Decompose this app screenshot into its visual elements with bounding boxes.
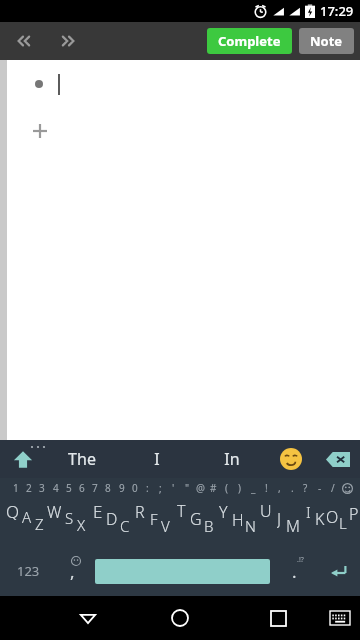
staticText: ' bbox=[172, 481, 175, 495]
button[interactable]: Z bbox=[32, 514, 47, 534]
button[interactable]: 6 bbox=[75, 480, 88, 496]
button[interactable]: 8 bbox=[101, 480, 114, 496]
button[interactable]: ! bbox=[260, 480, 273, 496]
button[interactable]: E bbox=[90, 500, 105, 520]
button[interactable]: Complete bbox=[207, 28, 292, 54]
button[interactable]: N bbox=[243, 516, 258, 536]
button[interactable]: " bbox=[181, 480, 194, 496]
staticText: O bbox=[326, 506, 339, 526]
button[interactable]: - bbox=[313, 480, 326, 496]
button[interactable]: 5 bbox=[62, 480, 75, 496]
staticText: 9 bbox=[119, 481, 125, 495]
staticText: - bbox=[318, 481, 322, 495]
button[interactable]: ? bbox=[299, 480, 312, 496]
staticText: H bbox=[232, 509, 244, 529]
staticText: / bbox=[331, 481, 335, 495]
button[interactable]: Period bbox=[278, 546, 310, 596]
staticText: F bbox=[150, 509, 158, 529]
button[interactable]: F bbox=[146, 509, 161, 529]
button[interactable]: I bbox=[301, 502, 316, 522]
button[interactable]: L bbox=[335, 513, 350, 533]
button[interactable]: Emoji bbox=[272, 440, 310, 478]
button[interactable]: Emoji symbols bbox=[340, 481, 354, 495]
button[interactable]: 9 bbox=[115, 480, 128, 496]
button[interactable]: Q bbox=[5, 500, 20, 520]
button[interactable]: Home bbox=[152, 596, 208, 640]
staticText: 0 bbox=[132, 481, 138, 495]
button[interactable]: D bbox=[104, 508, 119, 528]
button[interactable]: Shift bbox=[0, 440, 46, 478]
staticText: # bbox=[210, 481, 217, 495]
button[interactable]: ) bbox=[233, 480, 246, 496]
button[interactable]: T bbox=[174, 500, 189, 520]
staticText: Complete bbox=[218, 32, 281, 50]
staticText: 2 bbox=[26, 481, 32, 495]
staticText: ! bbox=[265, 481, 268, 495]
staticText: 123 bbox=[17, 562, 40, 580]
button[interactable]: ( bbox=[220, 480, 233, 496]
button[interactable]: O bbox=[325, 506, 340, 526]
button[interactable]: Note bbox=[299, 28, 354, 54]
staticText: @ bbox=[196, 481, 205, 495]
button[interactable]: The bbox=[46, 440, 118, 478]
staticText: W bbox=[47, 501, 62, 521]
button[interactable]: Enter bbox=[318, 546, 360, 596]
staticText: 6 bbox=[79, 481, 85, 495]
button[interactable]: Y bbox=[216, 501, 231, 521]
button[interactable]: Next bbox=[46, 22, 92, 60]
button[interactable]: 123 bbox=[4, 546, 52, 596]
button[interactable]: , bbox=[273, 480, 286, 496]
staticText: G bbox=[190, 508, 202, 528]
button[interactable]: C bbox=[117, 516, 132, 536]
button[interactable]: W bbox=[47, 501, 62, 521]
button[interactable]: X bbox=[74, 515, 89, 535]
button[interactable]: 0 bbox=[128, 480, 141, 496]
button[interactable]: 7 bbox=[88, 480, 101, 496]
button[interactable]: ; bbox=[154, 480, 167, 496]
button[interactable]: K bbox=[312, 508, 327, 528]
button[interactable]: U bbox=[258, 500, 273, 520]
button[interactable]: J bbox=[272, 508, 287, 528]
staticText: L bbox=[339, 513, 347, 533]
button[interactable]: S bbox=[62, 508, 77, 528]
button[interactable]: In bbox=[196, 440, 268, 478]
button[interactable]: R bbox=[132, 501, 147, 521]
button[interactable]: P bbox=[346, 503, 360, 523]
button[interactable]: 3 bbox=[35, 480, 48, 496]
staticText: Q bbox=[6, 500, 20, 520]
button[interactable]: _ bbox=[247, 480, 260, 496]
button[interactable]: . bbox=[286, 480, 299, 496]
button[interactable]: B bbox=[201, 516, 216, 536]
button[interactable]: Backspace bbox=[318, 440, 358, 478]
button[interactable]: A bbox=[19, 507, 34, 527]
button[interactable]: ' bbox=[167, 480, 180, 496]
button[interactable]: Space bbox=[95, 559, 270, 584]
staticText: T bbox=[177, 500, 186, 520]
button[interactable]: 4 bbox=[49, 480, 62, 496]
staticText: A bbox=[22, 507, 32, 527]
button[interactable]: @ bbox=[194, 480, 207, 496]
button[interactable]: M bbox=[285, 515, 300, 535]
staticText: U bbox=[260, 500, 272, 520]
staticText: , bbox=[70, 560, 75, 583]
staticText: P bbox=[349, 503, 359, 523]
button[interactable]: V bbox=[158, 516, 173, 536]
staticText: ; bbox=[159, 481, 162, 495]
staticText: K bbox=[315, 508, 325, 528]
button[interactable]: Previous bbox=[0, 22, 46, 60]
button[interactable]: Comma bbox=[56, 546, 88, 596]
button[interactable]: Keyboard bbox=[320, 596, 360, 640]
button[interactable]: 1 bbox=[9, 480, 22, 496]
button[interactable]: Recents bbox=[250, 596, 306, 640]
button[interactable]: Add item bbox=[20, 108, 52, 140]
button[interactable]: I bbox=[121, 440, 193, 478]
button[interactable]: List item bbox=[20, 70, 140, 94]
button[interactable]: # bbox=[207, 480, 220, 496]
button[interactable]: 2 bbox=[22, 480, 35, 496]
button[interactable]: H bbox=[230, 509, 245, 529]
button[interactable]: : bbox=[141, 480, 154, 496]
staticText: . bbox=[292, 560, 297, 583]
button[interactable]: G bbox=[188, 508, 203, 528]
button[interactable]: Back bbox=[60, 596, 116, 640]
button[interactable]: / bbox=[326, 480, 339, 496]
